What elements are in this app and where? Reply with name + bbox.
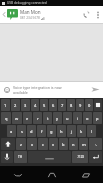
staticText: u (66, 116, 69, 121)
staticText: 5 (43, 103, 46, 108)
staticText: x (31, 142, 34, 147)
staticText: k (80, 129, 83, 134)
button[interactable]: More options (93, 6, 103, 23)
staticText: y (56, 116, 59, 121)
button[interactable]: y (53, 112, 62, 124)
button[interactable]: s (17, 125, 26, 137)
button[interactable]: 0 (85, 99, 93, 111)
staticText: s (21, 129, 23, 134)
button[interactable]: Man Mon (19, 6, 79, 23)
button[interactable]: Emoji keyboard (94, 99, 102, 111)
staticText: a (10, 129, 13, 134)
button[interactable]: e (23, 112, 32, 124)
button[interactable]: g (47, 125, 56, 137)
staticText: 1 (4, 103, 7, 108)
button[interactable]: o (83, 112, 92, 124)
button[interactable]: Voice input (1, 151, 13, 163)
staticText: z (20, 142, 22, 147)
staticText: 3 (24, 103, 27, 108)
button[interactable]: 5 (40, 99, 48, 111)
button[interactable]: 7 (58, 99, 66, 111)
button[interactable]: j (67, 125, 76, 137)
staticText: 4 (34, 103, 37, 108)
button[interactable]: Back (0, 6, 19, 23)
button[interactable]: 1 (1, 99, 10, 111)
button[interactable]: 3 (21, 99, 30, 111)
button[interactable]: Call (79, 6, 93, 23)
staticText: USB debugging connected (7, 1, 47, 5)
staticText: 8 (70, 103, 73, 108)
button[interactable]: 8 (67, 99, 75, 111)
staticText: c (42, 142, 44, 147)
staticText: q (5, 116, 8, 121)
staticText: Man Mon (20, 9, 41, 15)
staticText: o (86, 116, 89, 121)
staticText: b (62, 142, 65, 147)
staticText: l (91, 129, 93, 134)
staticText: .?123 (77, 155, 84, 159)
button[interactable]: u (63, 112, 72, 124)
button[interactable]: r (33, 112, 42, 124)
staticText: 2 (14, 103, 17, 108)
button[interactable]: Enter (89, 151, 102, 163)
staticText: available (13, 90, 28, 95)
button[interactable]: n (69, 138, 78, 150)
button[interactable]: l (87, 125, 96, 137)
staticText: w (15, 116, 19, 121)
button[interactable]: Voice type integration is now (13, 81, 87, 98)
button[interactable]: f (37, 125, 46, 137)
button[interactable]: Insert emoji (0, 81, 13, 98)
button[interactable]: TH (14, 151, 27, 163)
button[interactable]: z (16, 138, 26, 150)
staticText: 7 (61, 103, 64, 108)
staticText: Voice type integration is now (13, 85, 62, 90)
staticText: 0 (88, 103, 91, 108)
button[interactable]: p (93, 112, 102, 124)
staticText: e (26, 116, 29, 121)
button[interactable]: w (12, 112, 22, 124)
button[interactable]: ., (89, 138, 102, 150)
button[interactable]: d (27, 125, 36, 137)
button[interactable]: Shift (1, 138, 15, 150)
button[interactable]: h (57, 125, 66, 137)
button[interactable]: c (38, 138, 48, 150)
button[interactable]: Back (0, 166, 35, 183)
staticText: v (52, 142, 55, 147)
button[interactable]: 2 (11, 99, 20, 111)
staticText: h (60, 129, 63, 134)
button[interactable]: Home (35, 166, 69, 183)
button[interactable]: 4 (31, 99, 39, 111)
staticText: m (82, 142, 86, 147)
staticText: ., (95, 142, 97, 146)
button[interactable]: .?123 (72, 151, 88, 163)
staticText: f (41, 129, 43, 134)
staticText: r (37, 116, 39, 121)
staticText: 6 (52, 103, 55, 108)
staticText: 081 234 5678 (20, 16, 40, 20)
button[interactable]: t (43, 112, 52, 124)
button[interactable]: Recent apps (69, 166, 103, 183)
button[interactable]: i (73, 112, 82, 124)
button[interactable]: Send (87, 81, 103, 98)
staticText: d (30, 129, 33, 134)
button[interactable]: b (59, 138, 68, 150)
staticText: t (47, 116, 49, 121)
staticText: n (72, 142, 75, 147)
staticText: 9 (79, 103, 82, 108)
button[interactable]: a (7, 125, 16, 137)
staticText: TH (18, 155, 23, 159)
button[interactable]: m (79, 138, 88, 150)
button[interactable]: k (77, 125, 86, 137)
button[interactable]: v (49, 138, 58, 150)
button[interactable]: x (27, 138, 37, 150)
staticText: j (71, 129, 73, 134)
staticText: g (50, 129, 53, 134)
button[interactable]: Space (28, 151, 71, 163)
button[interactable]: 6 (49, 99, 57, 111)
staticText: i (77, 116, 79, 121)
button[interactable]: 9 (76, 99, 84, 111)
staticText: p (96, 116, 99, 121)
button[interactable]: q (1, 112, 11, 124)
